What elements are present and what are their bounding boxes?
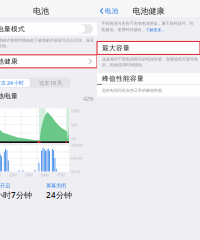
staticText: 过去 24 小时 [0, 79, 24, 86]
staticText: 了解更多… [145, 27, 164, 32]
staticText: 屏幕关闭 [46, 182, 66, 189]
button[interactable]: 电池 [97, 6, 119, 16]
staticText: 15分钟 [70, 156, 82, 161]
button[interactable]: 过去 24 小时 [0, 78, 31, 88]
staticText: 手机电池与所有可充电电池类似，属于易耗部件，性 [101, 21, 193, 26]
staticText: 过去 10 天 [39, 79, 62, 86]
staticText: 0分钟 [70, 169, 80, 174]
staticText: 42% [83, 95, 93, 102]
staticText: 电池 [105, 7, 119, 15]
staticText: 电池 [33, 6, 49, 16]
staticText: 24分钟 [46, 190, 72, 200]
staticText: 能越低。使用时间越短。 [101, 27, 145, 32]
staticText: 后，电池使用时间缩短。 [102, 62, 146, 67]
staticText: 04时 [41, 172, 49, 177]
staticText: 07时 [57, 172, 65, 177]
button[interactable]: 低电量模式 [0, 22, 97, 35]
button[interactable]: 您的电池目前支持正常的峰值性能。 [97, 84, 200, 96]
staticText: 0% [70, 136, 75, 141]
staticText: 100% [70, 108, 79, 114]
staticText: 峰值性能容量 [102, 74, 144, 83]
staticText: 屏幕开启 [0, 182, 10, 189]
staticText: 电池健康 [0, 57, 18, 65]
staticText: 低电量模式 [0, 25, 25, 33]
staticText: 01时 [25, 172, 33, 177]
staticText: 低电量模式将暂时降低如下载和邮件获取等后台活动，直至 [0, 38, 94, 43]
staticText: 最大容量 [102, 44, 130, 52]
staticText: 22时 [9, 172, 17, 177]
staticText: 1小时7分钟 [0, 190, 32, 200]
staticText: 您的电池目前支持正常的峰值性能。 [102, 88, 166, 93]
button[interactable]: 峰值性能容量 [97, 73, 200, 84]
staticText: 19时 [0, 172, 1, 177]
staticText: 30分钟 [70, 142, 82, 148]
button[interactable]: 过去 10 天 [31, 78, 71, 88]
staticText: 50% [70, 122, 77, 127]
staticText: 这是相对于新电池而言的电池容量。容量较低可能导致 [102, 57, 198, 62]
button[interactable]: 最大容量 [97, 41, 200, 54]
staticText: 电池电量 [0, 92, 18, 100]
staticText: 电池健康 [132, 6, 164, 16]
button[interactable]: 电池健康 [0, 55, 97, 68]
staticText: 完全充电。 [0, 43, 10, 48]
